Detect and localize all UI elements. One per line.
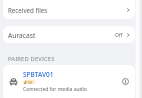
button[interactable]: SPBTAV01: [3, 65, 135, 98]
button[interactable]: Device details: [121, 77, 130, 86]
staticText: Received files: [8, 6, 48, 14]
button[interactable]: Received files: [3, 0, 135, 19]
staticText: Connected for media audio: [23, 86, 87, 93]
button[interactable]: Auracast: [3, 26, 135, 43]
staticText: SPBTAV01: [23, 70, 54, 79]
staticText: Auracast: [8, 31, 36, 40]
staticText: PAIRED DEVICES: [8, 55, 55, 63]
staticText: Off: [115, 32, 123, 39]
staticText: 50%: [28, 80, 34, 84]
